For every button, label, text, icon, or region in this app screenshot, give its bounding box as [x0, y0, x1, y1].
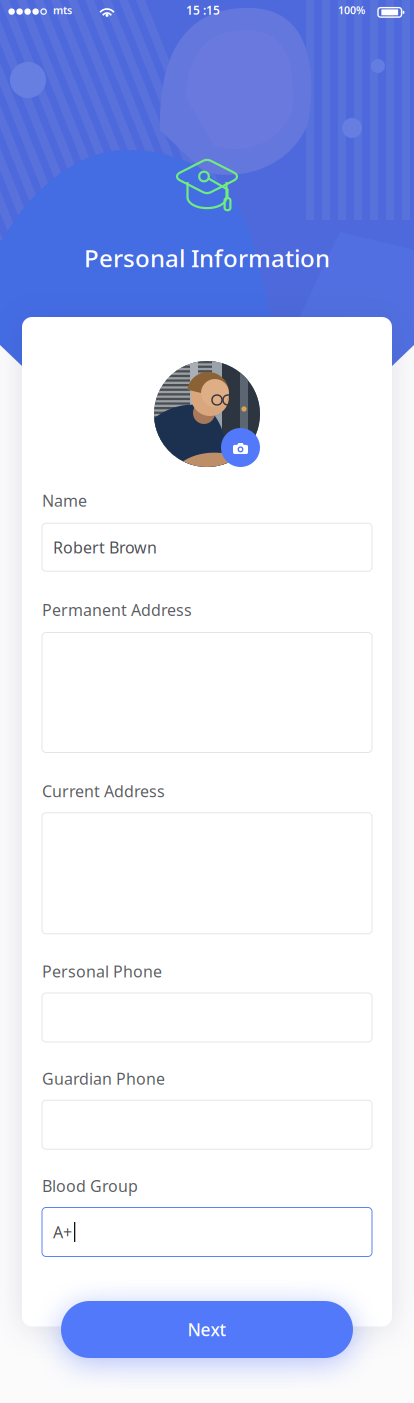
staticText: mts — [53, 3, 72, 17]
staticText: Personal Phone — [42, 961, 162, 982]
staticText: Robert Brown — [53, 537, 157, 558]
staticText: Permanent Address — [42, 599, 192, 620]
staticText: Guardian Phone — [42, 1068, 165, 1089]
staticText: Personal Information — [84, 242, 330, 274]
staticText: A+ — [53, 1221, 72, 1243]
staticText: 15 :15 — [186, 2, 220, 18]
staticText: Name — [42, 490, 87, 511]
button[interactable]: Next — [61, 1301, 353, 1358]
staticText: Blood Group — [42, 1175, 138, 1196]
staticText: 100% — [338, 3, 365, 17]
staticText: Next — [187, 1318, 226, 1341]
staticText: Current Address — [42, 780, 165, 802]
